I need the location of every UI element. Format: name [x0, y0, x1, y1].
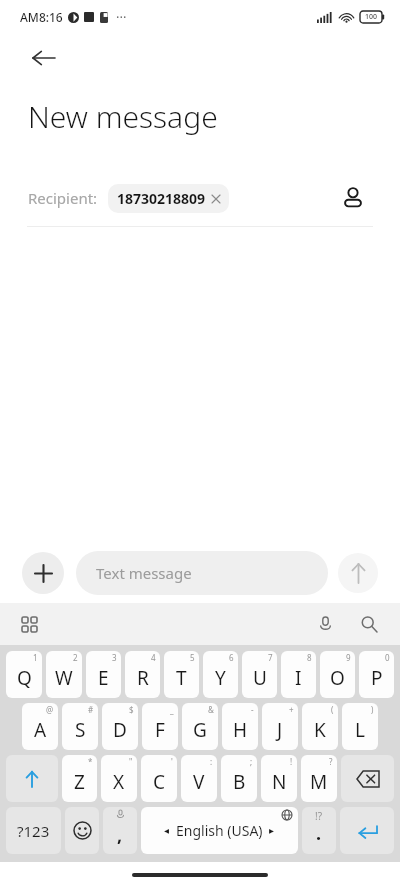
staticText: '	[171, 756, 173, 767]
button[interactable]: Text message	[76, 551, 328, 595]
staticText: .	[316, 821, 322, 846]
staticText: +	[289, 704, 294, 715]
button[interactable]: _	[142, 703, 178, 750]
button[interactable]: !?	[302, 807, 336, 854]
button[interactable]: 1	[6, 651, 42, 698]
staticText: English (USA)	[176, 821, 263, 840]
staticText: I	[295, 665, 302, 691]
staticText: )	[371, 704, 374, 715]
button[interactable]: 0	[359, 651, 394, 698]
staticText: 7	[268, 652, 273, 663]
staticText: F	[155, 717, 165, 743]
staticText: *	[88, 756, 93, 767]
staticText: R	[137, 665, 149, 691]
staticText: S	[75, 717, 86, 743]
button[interactable]: ;	[221, 755, 257, 802]
button[interactable]: Backspace	[341, 755, 394, 802]
staticText: Z	[74, 769, 85, 795]
staticText: 8	[307, 652, 312, 663]
button[interactable]: ◂	[141, 807, 298, 854]
staticText: T	[176, 665, 187, 691]
staticText: #	[88, 704, 94, 715]
button[interactable]: Keyboard options	[14, 609, 44, 639]
button[interactable]: $	[102, 703, 138, 750]
staticText: P	[371, 665, 383, 691]
staticText: AM8:16	[20, 9, 63, 25]
button[interactable]: Enter	[340, 807, 394, 854]
button[interactable]: ?123	[6, 807, 61, 854]
staticText: B	[233, 769, 246, 795]
staticText: N	[272, 769, 287, 795]
button[interactable]: Emoji	[65, 807, 99, 854]
button[interactable]: @	[22, 703, 58, 750]
staticText: ?123	[17, 821, 50, 841]
staticText: 9	[346, 652, 351, 663]
staticText: E	[98, 665, 109, 691]
button[interactable]: Shift	[6, 755, 58, 802]
button[interactable]: 2	[46, 651, 82, 698]
staticText: 6	[229, 652, 234, 663]
staticText: X	[113, 769, 125, 795]
staticText: V	[193, 769, 205, 795]
staticText: (	[331, 704, 334, 715]
staticText: Y	[215, 665, 226, 691]
staticText: 5	[190, 652, 195, 663]
button[interactable]: +	[262, 703, 298, 750]
button[interactable]: 6	[203, 651, 238, 698]
staticText: -	[251, 704, 254, 715]
button[interactable]: &	[182, 703, 218, 750]
button[interactable]: 8	[281, 651, 316, 698]
button[interactable]: Choose contact	[334, 179, 372, 217]
button[interactable]: (	[302, 703, 338, 750]
staticText: 100	[365, 12, 378, 22]
button[interactable]: *	[62, 755, 97, 802]
staticText: ···	[116, 8, 127, 26]
button[interactable]: Voice input	[310, 609, 340, 639]
staticText: 0	[385, 652, 390, 663]
button[interactable]: Search	[354, 609, 384, 639]
staticText: $	[129, 704, 134, 715]
staticText: !?	[315, 809, 323, 823]
button[interactable]: :	[181, 755, 217, 802]
button[interactable]: Back	[20, 34, 68, 82]
staticText: 18730218809	[117, 189, 206, 208]
staticText: U	[253, 665, 267, 691]
staticText: ▸	[269, 825, 275, 837]
staticText: "	[129, 756, 133, 767]
staticText: J	[277, 717, 283, 743]
button[interactable]: 7	[242, 651, 277, 698]
button[interactable]: 18730218809	[108, 184, 229, 213]
staticText: New message	[28, 96, 218, 137]
staticText: D	[113, 717, 127, 743]
button[interactable]: Add attachment	[22, 552, 64, 594]
button[interactable]: 3	[86, 651, 121, 698]
staticText: W	[55, 665, 73, 691]
button[interactable]: ,	[103, 807, 137, 854]
button[interactable]: )	[342, 703, 378, 750]
staticText: H	[233, 717, 248, 743]
staticText: 1	[33, 652, 38, 663]
staticText: !	[290, 756, 293, 767]
button[interactable]: Send	[338, 553, 378, 593]
button[interactable]: #	[62, 703, 98, 750]
button[interactable]: -	[222, 703, 258, 750]
button[interactable]: ?	[301, 755, 337, 802]
staticText: _	[170, 704, 174, 715]
staticText: ?	[329, 756, 333, 767]
button[interactable]: '	[141, 755, 177, 802]
button[interactable]: 4	[125, 651, 160, 698]
staticText: @	[46, 704, 54, 715]
staticText: &	[208, 704, 214, 715]
staticText: ◂	[164, 825, 170, 837]
button[interactable]: 5	[164, 651, 199, 698]
button[interactable]: "	[101, 755, 137, 802]
staticText: O	[330, 665, 345, 691]
staticText: 3	[112, 652, 117, 663]
staticText: :	[210, 756, 213, 767]
staticText: Text message	[96, 563, 192, 583]
staticText: C	[153, 769, 166, 795]
staticText: Recipient:	[28, 188, 98, 208]
button[interactable]: 9	[320, 651, 355, 698]
button[interactable]: !	[261, 755, 297, 802]
staticText: A	[34, 717, 47, 743]
